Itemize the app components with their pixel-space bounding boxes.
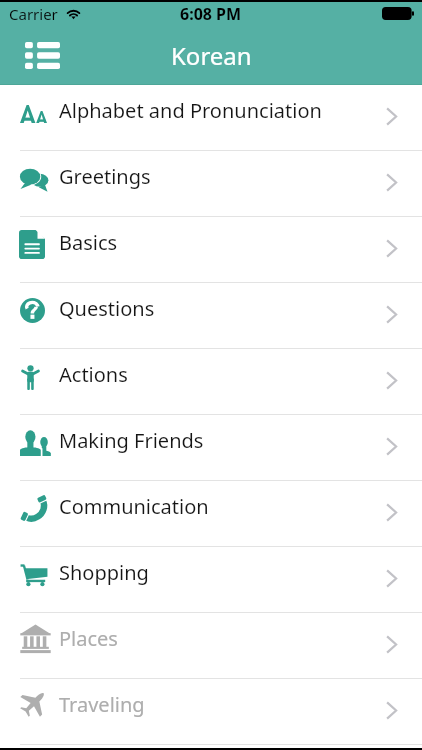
staticText: Traveling: [59, 691, 145, 718]
button[interactable]: Actions: [0, 349, 422, 415]
button[interactable]: Greetings: [0, 151, 422, 217]
staticText: Alphabet and Pronunciation: [59, 97, 322, 124]
staticText: Communication: [59, 493, 209, 520]
button[interactable]: Shopping: [0, 547, 422, 613]
staticText: Making Friends: [59, 427, 204, 454]
button[interactable]: Menu: [18, 31, 66, 79]
staticText: Questions: [59, 295, 155, 322]
staticText: Carrier: [9, 4, 58, 24]
button[interactable]: Communication: [0, 481, 422, 547]
staticText: Basics: [59, 229, 118, 256]
staticText: 6:08 PM: [180, 3, 242, 25]
staticText: Greetings: [59, 163, 151, 190]
button[interactable]: Questions: [0, 283, 422, 349]
button[interactable]: Alphabet and Pronunciation: [0, 85, 422, 151]
button[interactable]: Making Friends: [0, 415, 422, 481]
button[interactable]: Basics: [0, 217, 422, 283]
button[interactable]: Traveling: [0, 679, 422, 745]
button[interactable]: Places: [0, 613, 422, 679]
staticText: Korean: [171, 39, 252, 72]
staticText: Places: [59, 625, 118, 652]
staticText: Actions: [59, 361, 128, 388]
staticText: Shopping: [59, 559, 149, 586]
